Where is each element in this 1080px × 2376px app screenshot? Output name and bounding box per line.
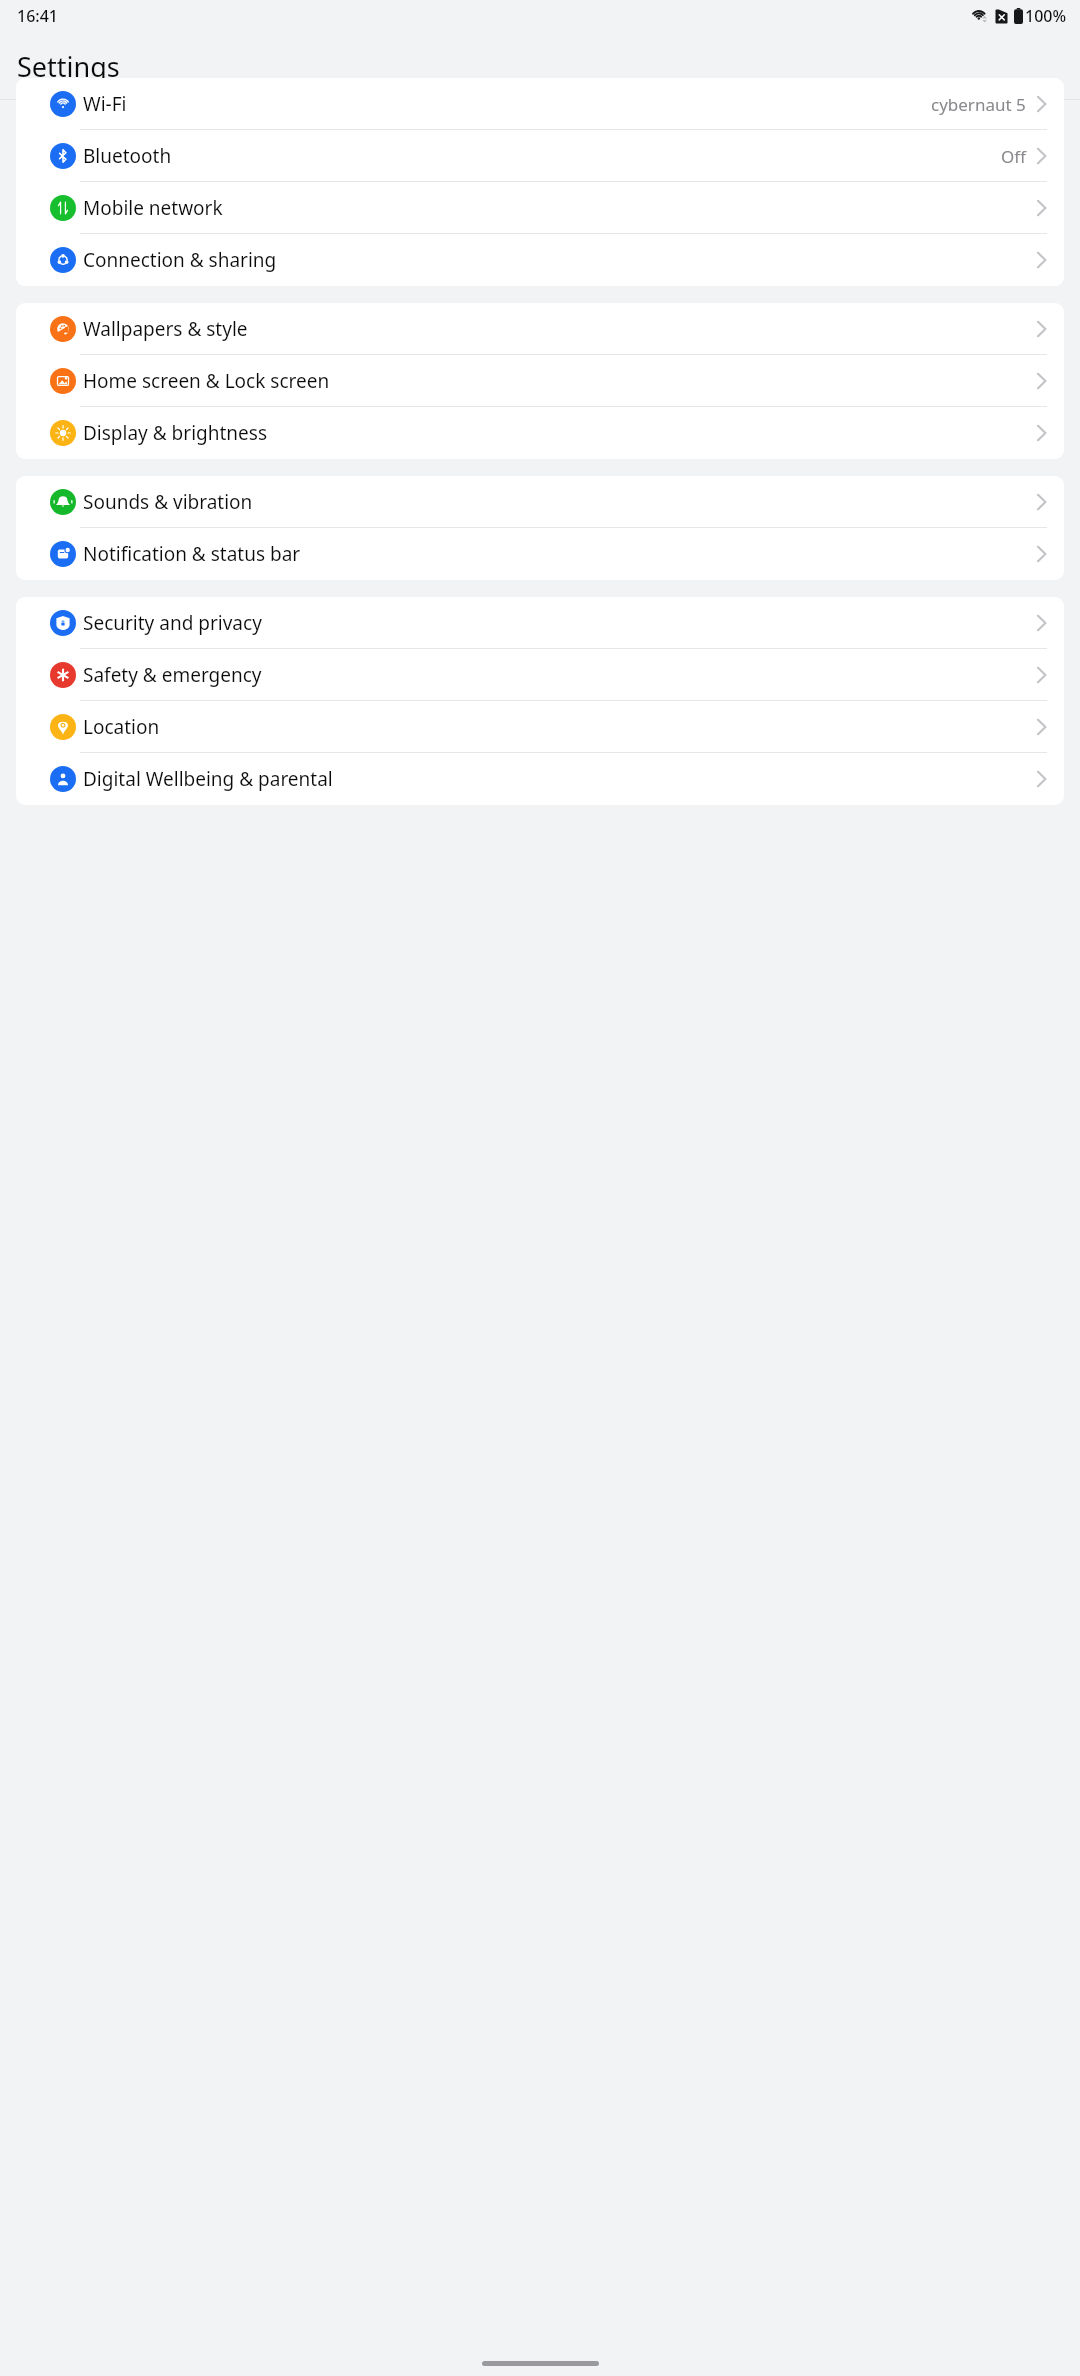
button[interactable]: Connection & sharing	[16, 234, 1064, 286]
button[interactable]: Mobile network	[16, 182, 1064, 234]
staticText: Location	[83, 714, 1036, 740]
staticText: Off	[1001, 145, 1026, 168]
staticText: Display & brightness	[83, 420, 1036, 446]
staticText: Mobile network	[83, 195, 1036, 221]
staticText: Bluetooth	[83, 143, 1001, 169]
button[interactable]: Home screen & Lock screen	[16, 355, 1064, 407]
button[interactable]: Display & brightness	[16, 407, 1064, 459]
button[interactable]: Wi-Fi	[16, 78, 1064, 130]
button[interactable]: Location	[16, 701, 1064, 753]
staticText: 100%	[1025, 5, 1067, 27]
staticText: cybernaut 5	[931, 93, 1026, 116]
staticText: Sounds & vibration	[83, 489, 1036, 515]
staticText: Connection & sharing	[83, 247, 1036, 273]
staticText: Security and privacy	[83, 610, 1036, 636]
button[interactable]: Safety & emergency	[16, 649, 1064, 701]
staticText: Safety & emergency	[83, 662, 1036, 688]
staticText: Digital Wellbeing & parental	[83, 766, 1036, 792]
staticText: Settings	[17, 48, 120, 85]
staticText: Notification & status bar	[83, 541, 1036, 567]
button[interactable]: Notification & status bar	[16, 528, 1064, 580]
button[interactable]: Sounds & vibration	[16, 476, 1064, 528]
staticText: Wi-Fi	[83, 91, 931, 117]
button[interactable]: Security and privacy	[16, 597, 1064, 649]
staticText: Wallpapers & style	[83, 316, 1036, 342]
staticText: 16:41	[17, 5, 58, 27]
button[interactable]: Bluetooth	[16, 130, 1064, 182]
staticText: Home screen & Lock screen	[83, 368, 1036, 394]
button[interactable]: Wallpapers & style	[16, 303, 1064, 355]
button[interactable]: Digital Wellbeing & parental	[16, 753, 1064, 805]
